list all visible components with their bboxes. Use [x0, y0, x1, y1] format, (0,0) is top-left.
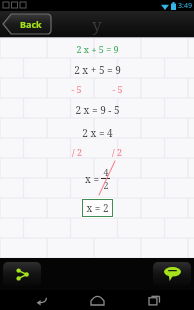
staticText: - 5 [71, 83, 82, 95]
button[interactable]: Home [81, 290, 113, 310]
staticText: y [92, 13, 102, 36]
staticText: / 2 [112, 146, 122, 158]
button[interactable]: Comments [153, 262, 191, 286]
staticText: 2 x + 5 = 9 [76, 43, 119, 55]
staticText: 2 x = 9 - 5 [75, 103, 120, 117]
staticText: x = [85, 172, 99, 186]
staticText: - 5 [112, 83, 123, 95]
staticText: Back [20, 18, 42, 30]
button[interactable]: Recent apps [138, 290, 170, 310]
button[interactable]: Share [3, 262, 41, 286]
staticText: 3:49 [178, 1, 192, 11]
staticText: 4 [103, 166, 109, 178]
staticText: / 2 [72, 146, 82, 158]
button[interactable]: Back [25, 290, 57, 310]
staticText: 2 x = 4 [82, 126, 113, 140]
staticText: 2 [103, 179, 109, 191]
staticText: 2 x + 5 = 9 [74, 63, 121, 77]
button[interactable]: Back [3, 14, 51, 34]
staticText: x = 2 [86, 201, 109, 215]
